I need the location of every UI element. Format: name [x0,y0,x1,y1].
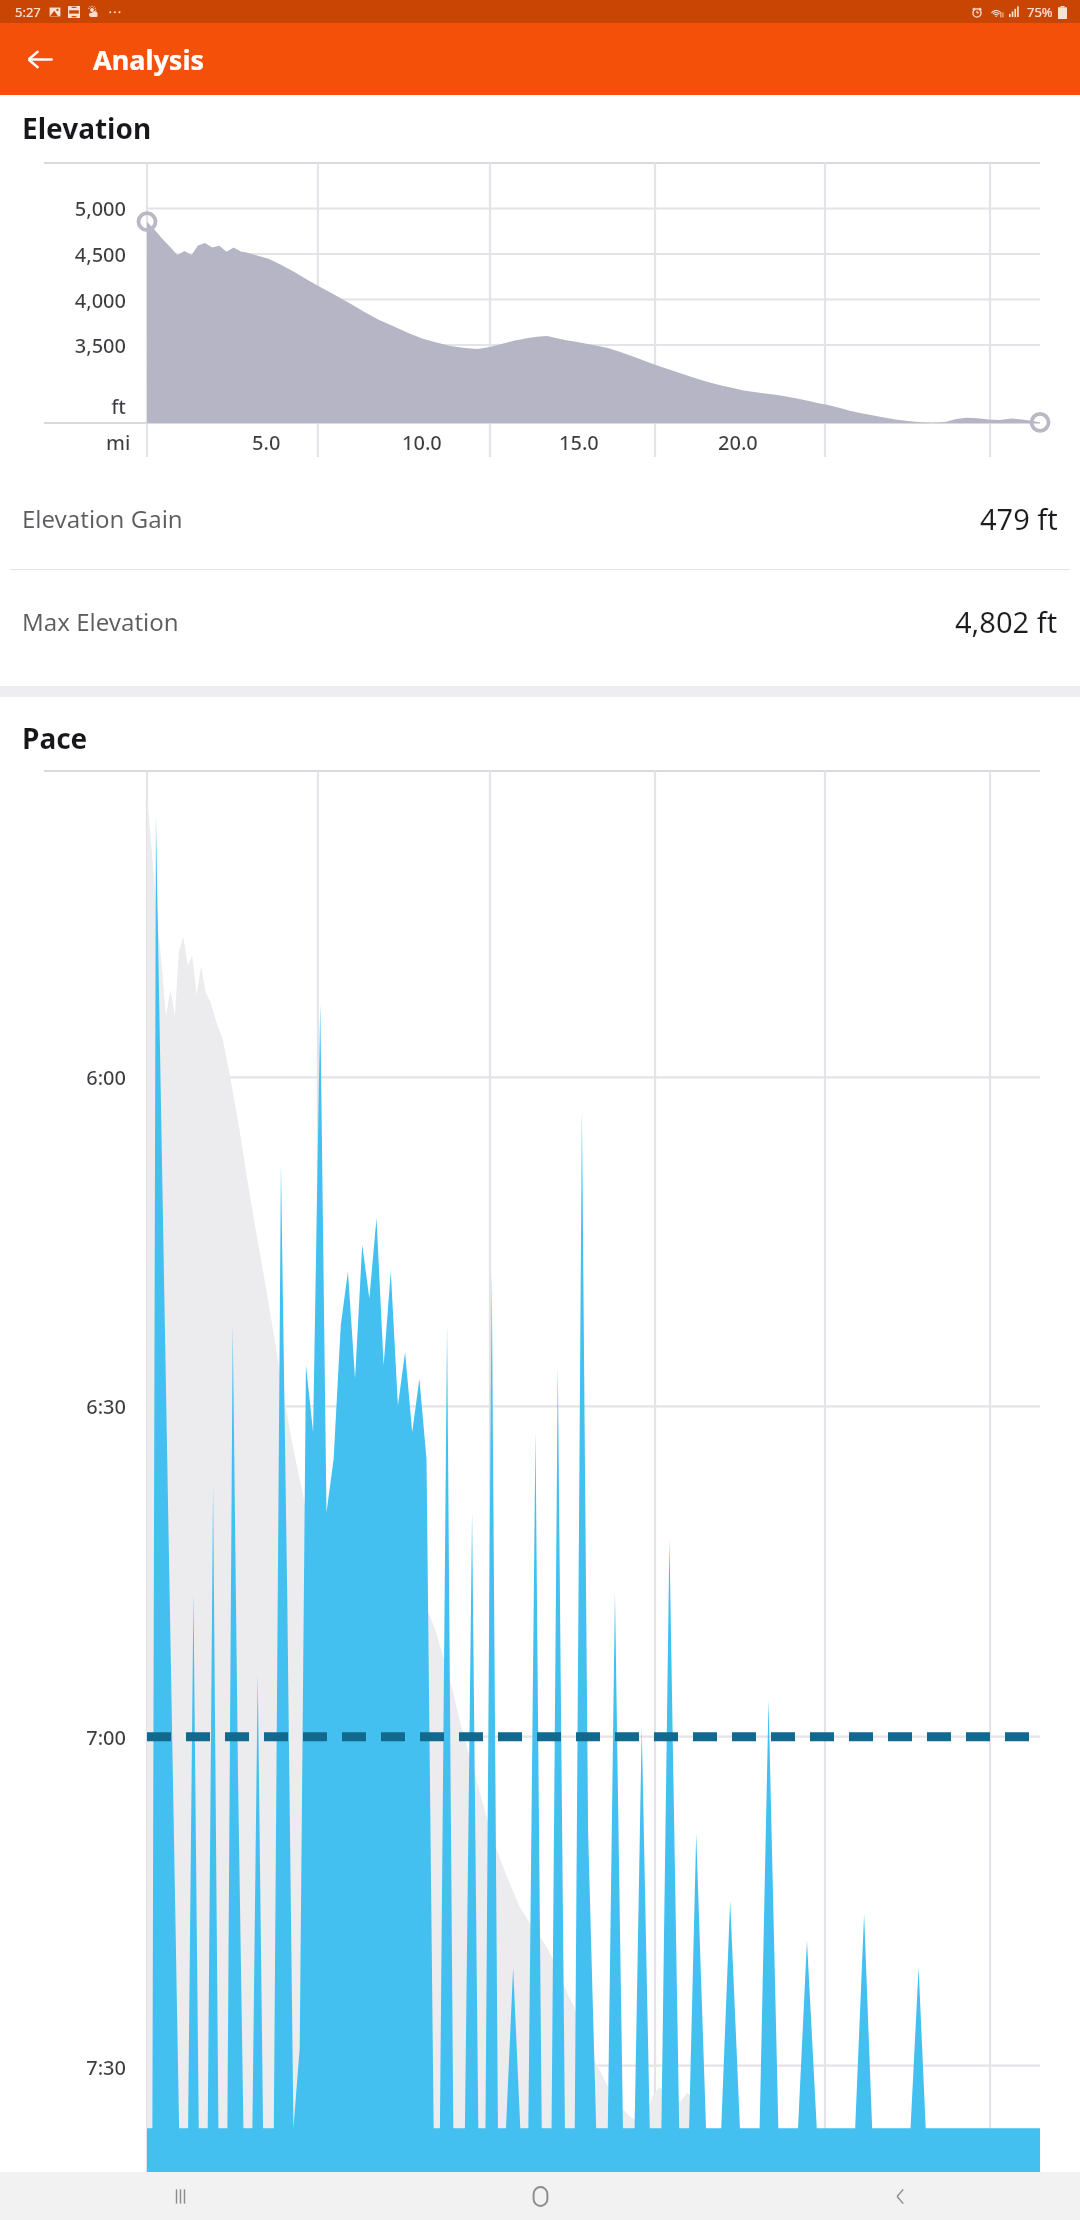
staticText: 4,500 [0,241,126,268]
staticText: Elevation [22,109,152,147]
staticText: 3,500 [0,332,126,359]
staticText: 4,802 ft [955,602,1058,641]
staticText: 20.0 [718,429,758,456]
staticText: 6:30 [0,1393,126,1420]
staticText: 5.0 [252,429,281,456]
staticText: Elevation Gain [22,502,183,535]
staticText: ft [0,393,126,420]
staticText: 10.0 [402,429,442,456]
staticText: 5:27 [15,3,41,21]
staticText: mi [106,429,131,456]
staticText: 75% [1027,3,1053,21]
staticText: Pace [22,719,88,757]
staticText: 7:00 [0,1724,126,1751]
staticText: 479 ft [980,499,1058,538]
button[interactable]: Max Elevation [0,570,1080,672]
staticText: 6:00 [0,1064,126,1091]
staticText: 15.0 [559,429,599,456]
button[interactable]: Back [14,33,66,85]
button[interactable]: Elevation Gain [0,467,1080,569]
staticText: 5,000 [0,195,126,222]
staticText: 7:30 [0,2054,126,2081]
button[interactable]: Back [720,2172,1080,2220]
button[interactable]: Home [360,2172,720,2220]
staticText: 4,000 [0,287,126,314]
staticText: Analysis [93,41,205,78]
staticText: Max Elevation [22,605,179,638]
button[interactable]: Recents [0,2172,360,2220]
